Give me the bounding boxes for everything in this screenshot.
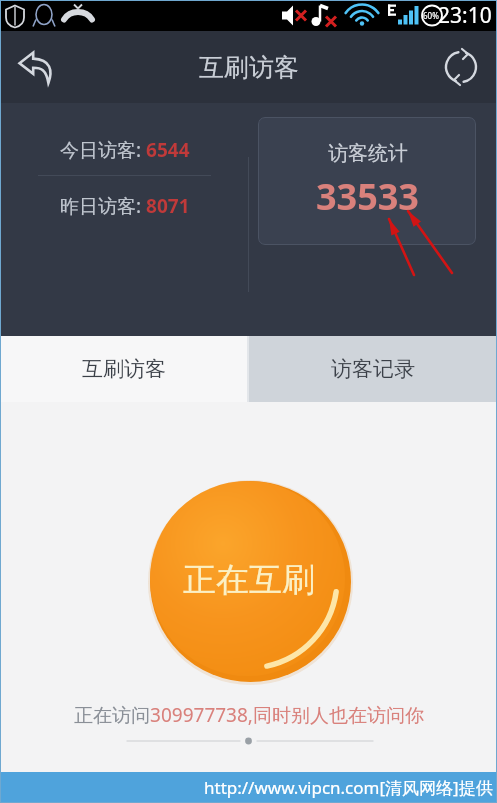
staticText: 访客统计 (328, 141, 408, 166)
staticText: 互刷访客 (199, 52, 299, 83)
staticText: http://www.vipcn.com[清风网络]提供 (204, 776, 493, 799)
staticText: 互刷访客 (82, 356, 166, 382)
staticText: 昨日访客: 8071 (60, 193, 190, 219)
button[interactable]: 今日访客: 6544 (0, 125, 249, 175)
staticText: 访客记录 (331, 356, 415, 382)
staticText: 正在互刷 (183, 559, 315, 601)
button[interactable]: Back (0, 31, 74, 103)
staticText: 23:10 (438, 1, 492, 30)
button[interactable]: 访客记录 (249, 336, 497, 402)
staticText: 33533 (316, 172, 419, 221)
staticText: 今日访客: 6544 (60, 137, 190, 163)
button[interactable]: 访客统计 (258, 117, 476, 245)
button[interactable]: 昨日访客: 8071 (0, 176, 249, 236)
staticText: 正在访问309977738,同时别人也在访问你 (74, 702, 424, 728)
button[interactable]: Refresh (425, 31, 497, 103)
button[interactable]: 正在互刷 (146, 477, 351, 682)
staticText: 60% (423, 10, 439, 21)
button[interactable]: 互刷访客 (0, 336, 247, 402)
